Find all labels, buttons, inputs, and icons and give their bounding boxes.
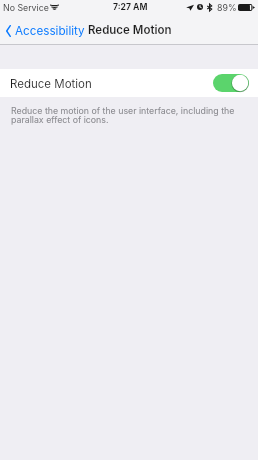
staticText: 7:27 AM xyxy=(113,2,148,12)
button[interactable]: Reduce Motion xyxy=(0,69,258,97)
staticText: Reduce Motion xyxy=(88,23,172,37)
button[interactable]: Reduce Motion on xyxy=(213,74,249,92)
staticText: No Service xyxy=(3,2,49,13)
staticText: 89% xyxy=(217,2,237,13)
staticText: Reduce the motion of the user interface,… xyxy=(11,105,239,125)
button[interactable]: Accessibility xyxy=(6,24,85,38)
staticText: Reduce Motion xyxy=(10,77,92,91)
staticText: Accessibility xyxy=(15,24,85,38)
